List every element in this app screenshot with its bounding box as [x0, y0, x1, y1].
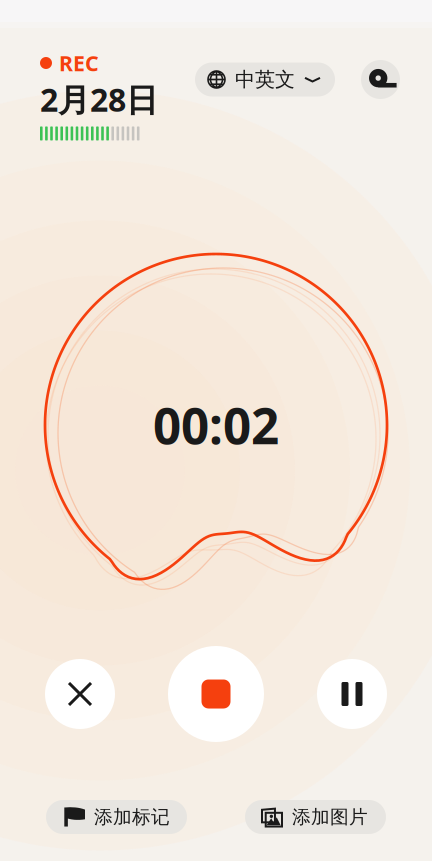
- button[interactable]: 中英文: [195, 62, 335, 96]
- staticText: REC: [59, 49, 99, 77]
- staticText: 添加图片: [292, 805, 368, 828]
- button[interactable]: Cancel: [45, 659, 115, 729]
- button[interactable]: Recordings: [361, 60, 400, 99]
- button[interactable]: Pause: [317, 659, 387, 729]
- staticText: 添加标记: [94, 805, 170, 828]
- staticText: 中英文: [235, 67, 295, 92]
- button[interactable]: 添加标记: [46, 800, 187, 834]
- button[interactable]: 添加图片: [245, 800, 386, 834]
- staticText: 00:02: [153, 392, 279, 458]
- button[interactable]: Stop: [168, 646, 264, 742]
- staticText: 2月28日: [40, 78, 158, 120]
